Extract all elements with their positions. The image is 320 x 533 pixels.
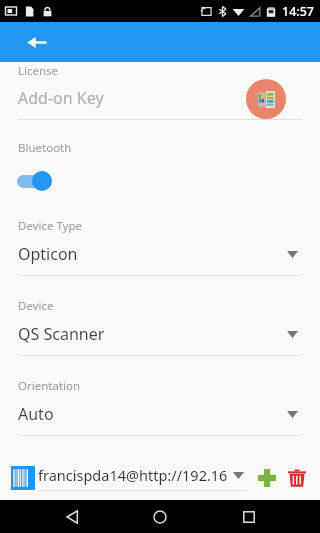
button[interactable]: Delete connection bbox=[284, 465, 310, 491]
staticText: QS Scanner bbox=[18, 323, 105, 345]
button[interactable]: Add-on Key bbox=[0, 87, 320, 109]
staticText: Add-on Key bbox=[18, 87, 104, 109]
button[interactable]: Opticon bbox=[0, 243, 320, 276]
staticText: Device Type bbox=[18, 218, 83, 234]
button[interactable]: Add connection bbox=[254, 465, 280, 491]
staticText: Opticon bbox=[18, 243, 78, 265]
button[interactable]: Scan add-on key bbox=[246, 79, 286, 119]
button[interactable]: QS Scanner bbox=[0, 323, 320, 356]
button[interactable]: Back bbox=[55, 500, 89, 533]
button[interactable]: Barcode bbox=[10, 465, 36, 491]
button[interactable] bbox=[0, 166, 320, 196]
staticText: Device bbox=[18, 298, 54, 314]
staticText: 14:57 bbox=[282, 3, 315, 20]
staticText: Orientation bbox=[18, 378, 81, 394]
staticText: Auto bbox=[18, 403, 54, 425]
staticText: Bluetooth bbox=[18, 140, 72, 156]
staticText: francispda14@http://192.16 bbox=[38, 465, 228, 485]
button[interactable]: Back bbox=[22, 28, 50, 56]
staticText: License bbox=[18, 63, 59, 79]
button[interactable]: Home bbox=[143, 500, 177, 533]
button[interactable]: Recents bbox=[232, 500, 266, 533]
button[interactable]: Auto bbox=[0, 403, 320, 436]
button[interactable]: francispda14@http://192.16 bbox=[38, 465, 246, 491]
